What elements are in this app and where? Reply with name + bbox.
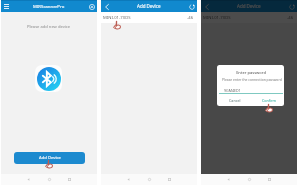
button[interactable]: Account [86, 1, 97, 12]
staticText: MINI-01-7XDS [103, 15, 131, 21]
button[interactable]: MINI-01-7XDS [101, 12, 197, 23]
button[interactable]: Confirm [260, 97, 279, 104]
button[interactable]: Recent apps [265, 175, 274, 184]
staticText: Add Device [39, 155, 61, 161]
staticText: Cancel [229, 98, 241, 103]
staticText: 9GM4ED1 [224, 88, 241, 93]
button[interactable]: Home [245, 175, 254, 184]
staticText: MIRScannerPro [33, 3, 65, 9]
staticText: -46 [287, 15, 294, 21]
button[interactable]: Menu [1, 1, 12, 12]
button[interactable]: Back [201, 1, 212, 12]
button[interactable]: Cancel [227, 97, 243, 104]
button[interactable]: MINI-01-7XDS [201, 12, 297, 23]
button[interactable]: Recent apps [65, 175, 74, 184]
staticText: Enter password [236, 70, 266, 75]
button[interactable]: Recent apps [165, 175, 174, 184]
button[interactable]: Refresh [186, 1, 197, 12]
button[interactable]: Back [24, 175, 33, 184]
button[interactable]: Home [45, 175, 54, 184]
staticText: Add Device [137, 3, 161, 9]
button[interactable]: Back [101, 1, 112, 12]
button[interactable]: Add Device [14, 152, 85, 164]
button[interactable]: Home [145, 175, 154, 184]
staticText: Confirm [262, 98, 277, 103]
staticText: Please add new device [27, 24, 71, 30]
button[interactable]: Refresh [286, 1, 297, 12]
button[interactable]: Back [224, 175, 233, 184]
staticText: Add Device [237, 3, 261, 9]
staticText: -46 [187, 15, 194, 21]
staticText: Please enter the connection password [222, 77, 282, 82]
staticText: MINI-01-7XDS [203, 15, 231, 21]
button[interactable]: Back [124, 175, 133, 184]
